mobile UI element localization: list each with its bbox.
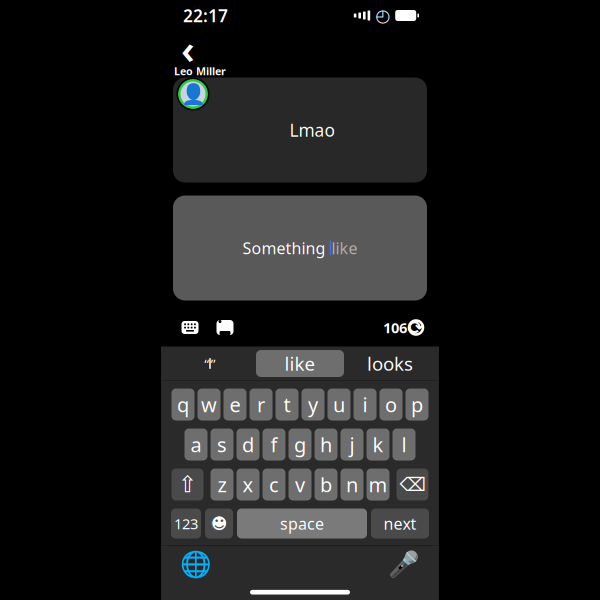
staticText: g — [294, 431, 306, 458]
button[interactable]: 123 — [171, 508, 201, 538]
button[interactable]: s — [210, 428, 233, 460]
button[interactable]: x — [236, 468, 259, 500]
button[interactable]: Photos — [212, 314, 238, 340]
staticText: t — [283, 391, 290, 418]
staticText: b — [320, 471, 332, 498]
staticText: a — [190, 431, 201, 458]
staticText: f — [270, 431, 277, 458]
button[interactable]: u — [327, 388, 350, 420]
staticText: m — [368, 471, 387, 498]
staticText: x — [242, 471, 253, 498]
button[interactable]: z — [210, 468, 233, 500]
button[interactable]: c — [262, 468, 285, 500]
staticText: h — [320, 431, 332, 458]
button[interactable]: n — [340, 468, 363, 500]
button[interactable]: looks — [344, 347, 436, 379]
staticText: o — [385, 391, 397, 418]
button[interactable]: b — [314, 468, 337, 500]
staticText: 123 — [174, 514, 198, 533]
button[interactable]: f — [262, 428, 285, 460]
button[interactable]: next — [371, 508, 429, 538]
staticText: u — [333, 391, 345, 418]
staticText: s — [217, 431, 227, 458]
staticText: Lmao — [289, 118, 334, 141]
staticText: 🎤 — [388, 550, 420, 579]
button[interactable]: g — [288, 428, 311, 460]
staticText: 106 — [383, 318, 407, 337]
staticText: c — [269, 471, 279, 498]
staticText: “ — [204, 355, 209, 372]
staticText: ◴ — [375, 6, 390, 25]
staticText: looks — [367, 351, 413, 376]
button[interactable]: l — [392, 428, 415, 460]
button[interactable]: t — [275, 388, 298, 420]
staticText: ” — [211, 355, 216, 372]
staticText: q — [177, 391, 189, 418]
button[interactable]: w — [197, 388, 220, 420]
button[interactable]: Dictate — [389, 551, 419, 577]
button[interactable]: Emoji — [205, 508, 233, 538]
staticText: space — [280, 513, 324, 534]
staticText: 🌐 — [180, 550, 212, 579]
staticText: j — [349, 431, 354, 458]
staticText: p — [411, 391, 423, 418]
staticText: ⇧ — [178, 472, 197, 497]
staticText: next — [383, 513, 416, 534]
button[interactable]: Delete — [396, 468, 428, 500]
button[interactable]: o — [379, 388, 402, 420]
button[interactable]: e — [223, 388, 246, 420]
button[interactable]: q — [171, 388, 194, 420]
button[interactable]: Change keyboard — [181, 551, 211, 577]
button[interactable]: m — [366, 468, 389, 500]
button[interactable]: Sync, 106 remaining — [383, 318, 423, 337]
staticText: w — [201, 391, 217, 418]
button[interactable]: r — [249, 388, 272, 420]
staticText: Something — [243, 237, 330, 259]
staticText: r — [257, 391, 265, 418]
staticText: ☺ — [209, 513, 228, 534]
staticText: ‹ — [181, 22, 195, 75]
button[interactable]: Shift — [171, 468, 203, 500]
button[interactable]: k — [366, 428, 389, 460]
staticText: ⌫ — [399, 474, 425, 495]
button[interactable]: j — [340, 428, 363, 460]
staticText: z — [217, 471, 226, 498]
staticText: ⟳ — [408, 317, 424, 338]
button[interactable]: space — [237, 508, 367, 538]
staticText: l — [401, 431, 406, 458]
button[interactable]: Quoted text suggestion — [164, 347, 256, 379]
button[interactable]: a — [184, 428, 207, 460]
button[interactable]: i — [353, 388, 376, 420]
staticText: i — [362, 391, 367, 418]
staticText: y — [308, 391, 318, 418]
staticText: like — [331, 237, 357, 259]
button[interactable]: p — [405, 388, 428, 420]
button[interactable]: d — [236, 428, 259, 460]
staticText: 👤 — [180, 83, 205, 105]
staticText: 22:17 — [183, 4, 228, 27]
staticText: e — [229, 391, 240, 418]
button[interactable]: y — [301, 388, 324, 420]
button[interactable]: Keyboard — [177, 314, 203, 340]
button[interactable]: Back — [171, 32, 205, 64]
staticText: like — [284, 351, 315, 376]
button[interactable]: v — [288, 468, 311, 500]
staticText: Leo Miller — [174, 64, 226, 78]
staticText: k — [372, 431, 383, 458]
staticText: v — [295, 471, 305, 498]
button[interactable]: like — [256, 350, 344, 377]
button[interactable]: h — [314, 428, 337, 460]
staticText: d — [242, 431, 254, 458]
staticText: n — [346, 471, 358, 498]
